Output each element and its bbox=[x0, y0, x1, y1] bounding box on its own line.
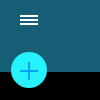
button[interactable]: Open navigation menu bbox=[8, 3, 50, 37]
button[interactable]: Add bbox=[11, 52, 47, 88]
